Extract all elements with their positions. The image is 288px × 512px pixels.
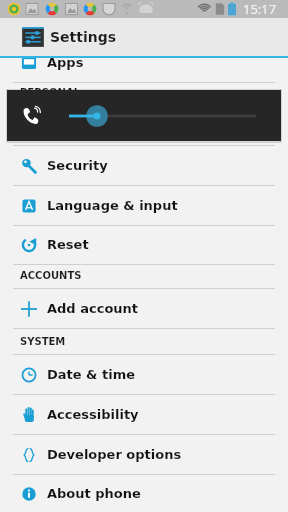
staticText: About phone [47,486,141,501]
button[interactable]: Reset [0,225,288,265]
button[interactable]: Date & time [0,355,288,395]
staticText: SYSTEM [20,336,66,348]
button[interactable]: Add account [0,289,288,329]
button[interactable]: Location [0,106,288,146]
button[interactable]: Language & input [0,186,288,226]
staticText: Apps [47,58,84,70]
staticText: Reset [47,237,89,252]
staticText: Settings [50,29,117,45]
staticText: Developer options [47,447,182,462]
button[interactable]: Developer options [0,435,288,475]
staticText: Date & time [47,367,136,382]
staticText: ACCOUNTS [20,270,82,282]
staticText: Security [47,158,108,173]
staticText: Language & input [47,198,178,213]
button[interactable]: Security [0,146,288,186]
button[interactable]: Apps [0,58,288,83]
staticText: Accessibility [47,407,139,422]
staticText: Add account [47,301,139,316]
staticText: Location [47,118,110,133]
button[interactable]: About phone [0,474,288,512]
staticText: 15:17 [243,0,277,18]
button[interactable]: Accessibility [0,395,288,435]
staticText: PERSONAL [20,87,81,99]
